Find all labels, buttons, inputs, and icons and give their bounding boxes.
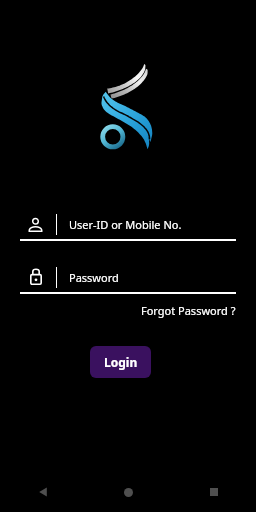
staticText: User-ID or Mobile No.: [69, 217, 182, 232]
button[interactable]: Back: [0, 472, 86, 512]
button[interactable]: Login: [90, 346, 151, 378]
staticText: Login: [104, 354, 138, 370]
button[interactable]: Forgot Password ?: [141, 303, 236, 318]
staticText: Forgot Password ?: [141, 303, 236, 318]
button[interactable]: Password: [0, 263, 256, 297]
button[interactable]: User-ID or Mobile No.: [0, 210, 256, 244]
button[interactable]: Home: [86, 472, 171, 512]
button[interactable]: Recents: [171, 472, 256, 512]
staticText: Password: [69, 270, 119, 285]
